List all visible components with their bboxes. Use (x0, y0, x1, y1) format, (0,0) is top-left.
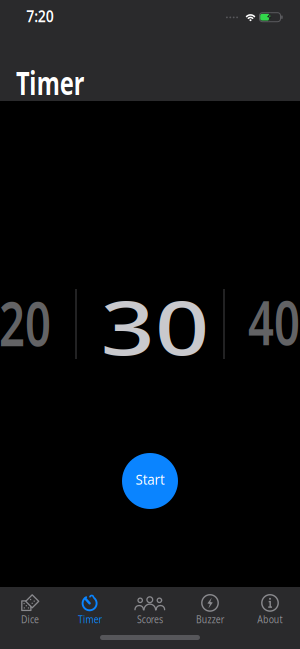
staticText: About (254, 612, 285, 626)
staticText: Scores (134, 612, 166, 626)
staticText: 30 (112, 276, 198, 376)
button[interactable]: Timer (60, 588, 120, 632)
staticText: Start (134, 469, 166, 489)
button[interactable]: About (240, 588, 300, 632)
button[interactable]: 20 (0, 282, 60, 363)
button[interactable]: 40 (239, 281, 300, 362)
button[interactable]: Scores (120, 588, 180, 632)
staticText: Buzzer (193, 612, 227, 626)
staticText: 40 (239, 281, 300, 362)
staticText: 7:20 (24, 5, 55, 27)
button[interactable]: Dice (0, 588, 60, 632)
staticText: Timer (75, 612, 104, 626)
button[interactable]: Buzzer (180, 588, 240, 632)
staticText: Dice (19, 612, 41, 626)
staticText: 20 (0, 282, 60, 363)
button[interactable]: Start (122, 453, 178, 509)
staticText: Timer (16, 61, 108, 104)
